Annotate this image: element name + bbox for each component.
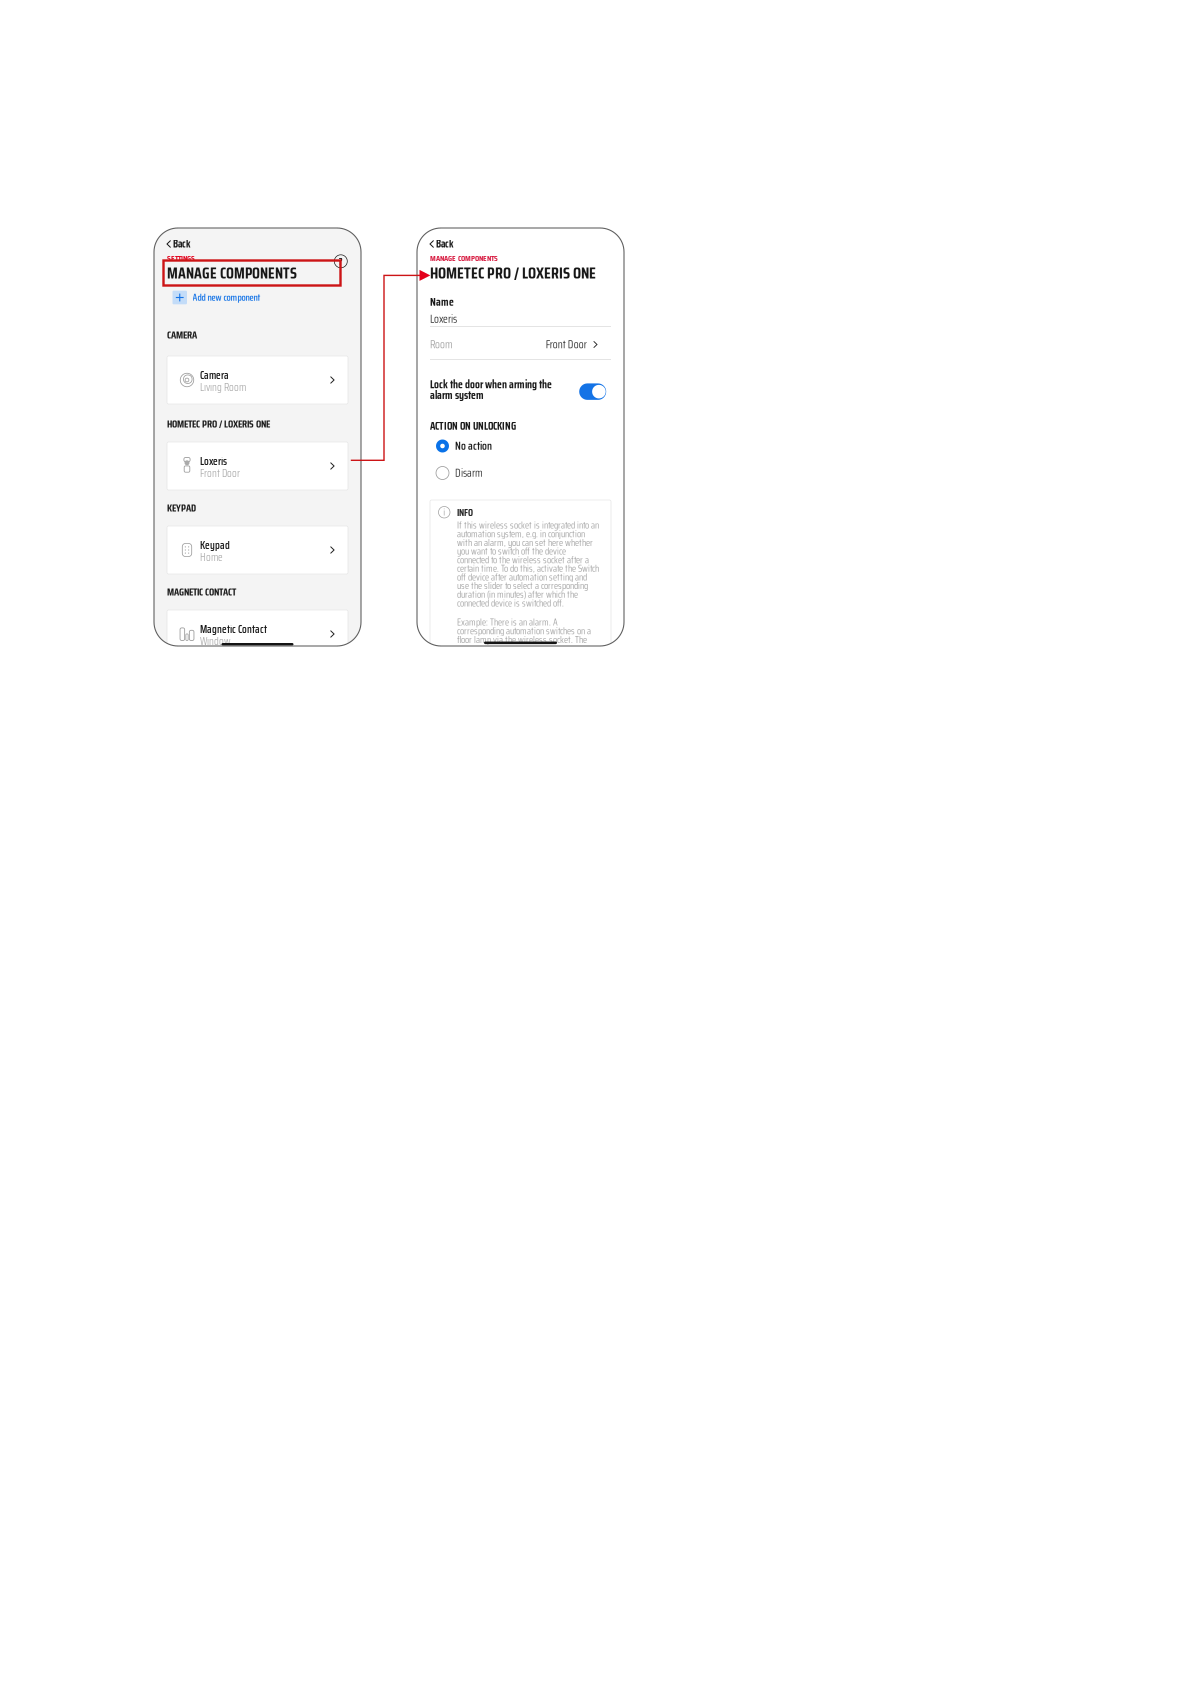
staticText: MAGNETIC CONTACT: [167, 584, 236, 600]
staticText: Example: There is an alarm. A correspond…: [457, 618, 591, 644]
staticText: Name: [430, 293, 454, 311]
staticText: Back: [436, 236, 453, 252]
staticText: Front Door: [546, 336, 587, 353]
staticText: KEYPAD: [167, 500, 196, 516]
staticText: Living Room: [200, 379, 246, 396]
staticText: Front Door: [200, 465, 240, 482]
button[interactable]: Camera: [167, 356, 348, 404]
staticText: Room: [430, 336, 453, 353]
staticText: INFO: [457, 505, 473, 520]
button[interactable]: Loxeris: [167, 442, 348, 490]
staticText: No action: [455, 437, 492, 455]
button[interactable]: Back: [417, 237, 624, 251]
staticText: Home: [200, 549, 223, 566]
button[interactable]: Room: [430, 336, 611, 353]
staticText: MANAGE COMPONENTS: [430, 251, 498, 264]
staticText: CAMERA: [167, 327, 197, 343]
button[interactable]: Lock the door when arming the alarm syst…: [579, 383, 606, 400]
staticText: ACTION ON UNLOCKING: [430, 418, 516, 434]
staticText: SETTINGS: [167, 251, 195, 264]
staticText: Back: [173, 236, 190, 252]
button[interactable]: Magnetic Contact: [167, 610, 348, 658]
staticText: Disarm: [455, 464, 483, 482]
button[interactable]: No action: [436, 438, 611, 454]
button[interactable]: Help: [333, 254, 348, 269]
staticText: Loxeris: [200, 453, 227, 470]
button[interactable]: Disarm: [436, 465, 611, 481]
button[interactable]: Keypad: [167, 526, 348, 574]
staticText: HOMETEC PRO / LOXERIS ONE: [430, 260, 596, 285]
staticText: Lock the door when arming the alarm syst…: [430, 379, 552, 401]
staticText: i: [443, 505, 445, 520]
staticText: Camera: [200, 367, 229, 384]
staticText: Magnetic Contact: [200, 621, 267, 638]
staticText: Loxeris: [430, 310, 457, 328]
staticText: Keypad: [200, 537, 230, 554]
staticText: Add new component: [192, 290, 260, 305]
staticText: Window: [200, 633, 231, 650]
staticText: MANAGE COMPONENTS: [167, 261, 297, 285]
staticText: If this wireless socket is integrated in…: [457, 521, 599, 607]
staticText: HOMETEC PRO / LOXERIS ONE: [167, 416, 270, 432]
staticText: ?: [339, 253, 343, 269]
button[interactable]: Add new component: [154, 290, 361, 304]
button[interactable]: Back: [154, 237, 361, 251]
